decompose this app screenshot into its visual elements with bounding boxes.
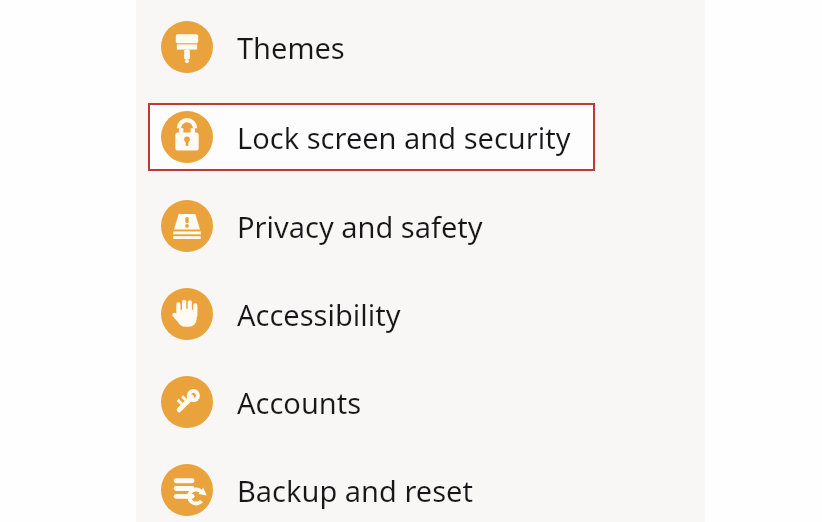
staticText: Backup and reset <box>237 471 473 510</box>
button[interactable]: Backup and reset <box>148 456 595 522</box>
staticText: Accessibility <box>237 295 401 334</box>
staticText: Accounts <box>237 383 362 422</box>
button[interactable]: Accessibility <box>148 280 595 348</box>
button[interactable]: Themes <box>148 13 595 81</box>
button[interactable]: Accounts <box>148 368 595 436</box>
staticText: Privacy and safety <box>237 207 483 246</box>
staticText: Lock screen and security <box>237 118 571 157</box>
button[interactable]: Lock screen and security <box>148 103 595 171</box>
button[interactable]: Privacy and safety <box>148 192 595 260</box>
staticText: Themes <box>237 28 345 67</box>
